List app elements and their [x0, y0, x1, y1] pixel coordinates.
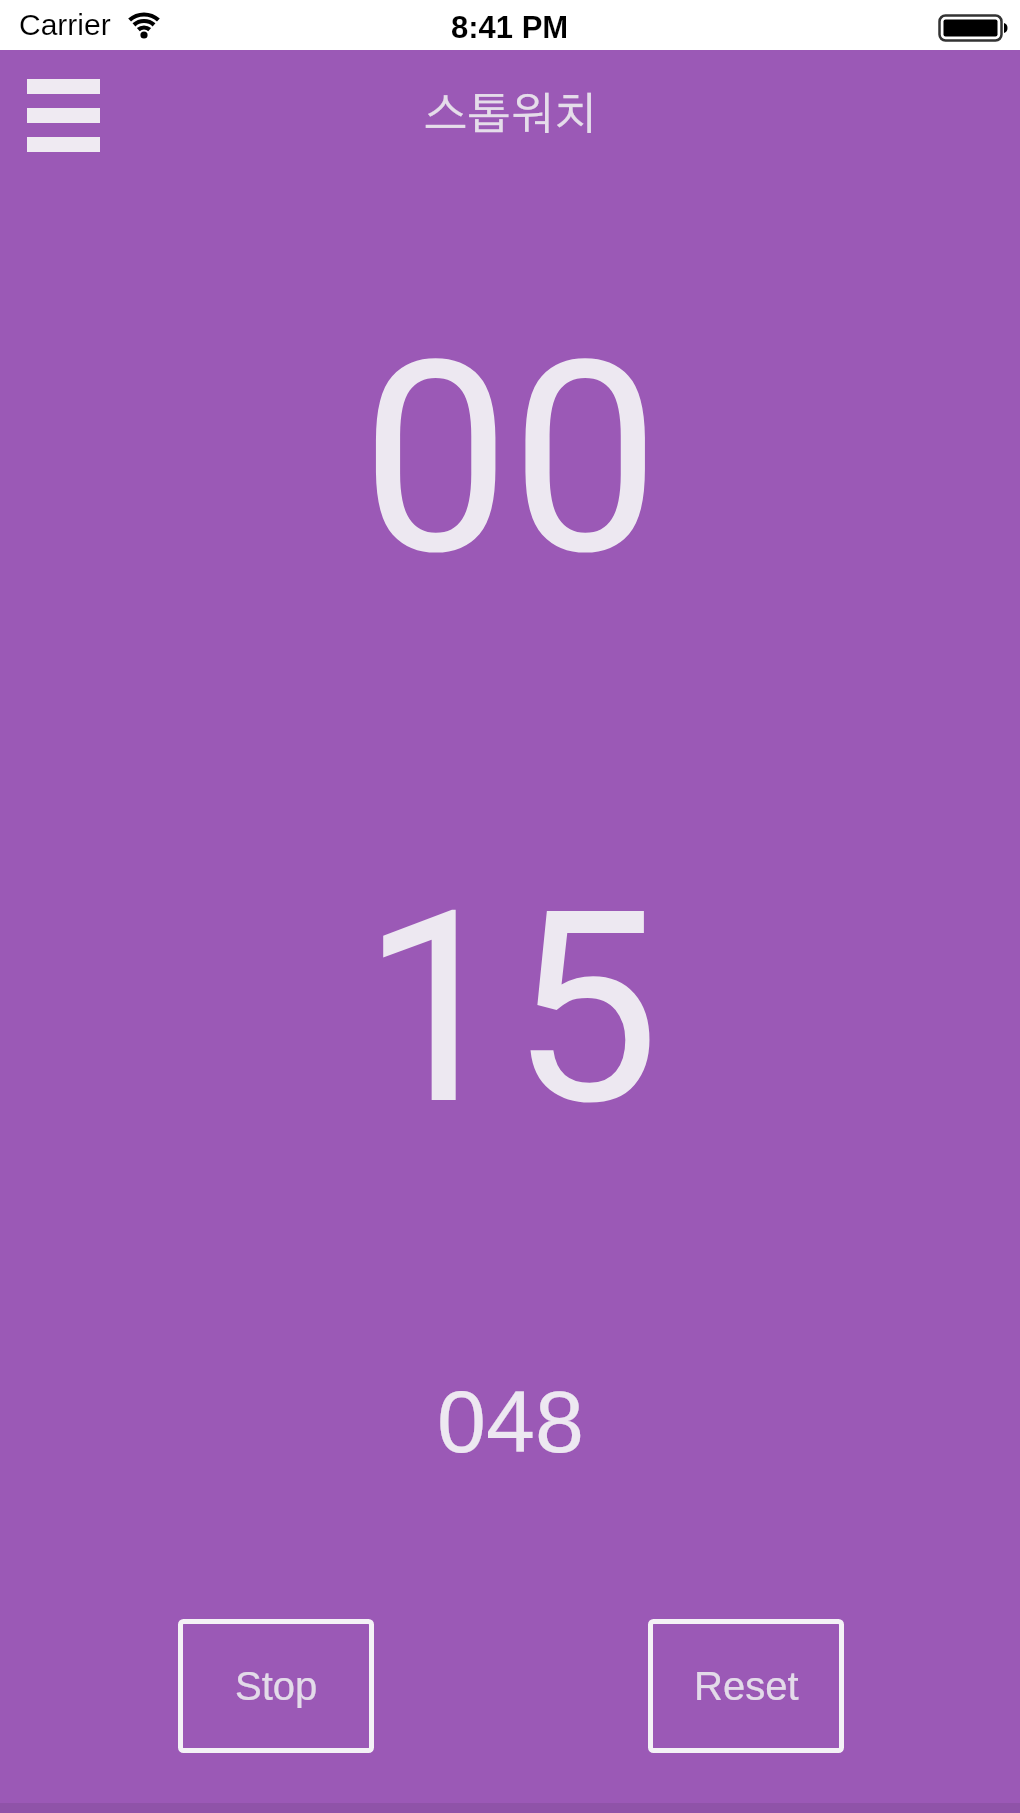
staticText: 15 [361, 853, 660, 1165]
staticText: 00 [361, 303, 660, 615]
staticText: Carrier [19, 8, 111, 42]
staticText: 048 [437, 1372, 584, 1470]
staticText: 8:41 PM [451, 10, 569, 45]
button[interactable] [27, 79, 100, 152]
staticText: 스톱워치 [424, 93, 597, 138]
staticText: Stop [235, 1664, 318, 1709]
staticText: Reset [694, 1664, 799, 1709]
button[interactable]: Reset [648, 1619, 844, 1753]
button[interactable]: Stop [178, 1619, 374, 1753]
